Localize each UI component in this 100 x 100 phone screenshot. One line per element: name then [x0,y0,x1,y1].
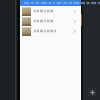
button[interactable]: Open item [20,16,81,26]
button[interactable]: Open item [71,8,78,15]
button[interactable]: Emulator controls [88,88,96,96]
button[interactable]: Open item [20,26,81,36]
button[interactable]: Open item [20,6,81,16]
button[interactable] [20,0,81,6]
button[interactable]: Open item [71,28,78,35]
button[interactable]: Open item [71,18,78,25]
